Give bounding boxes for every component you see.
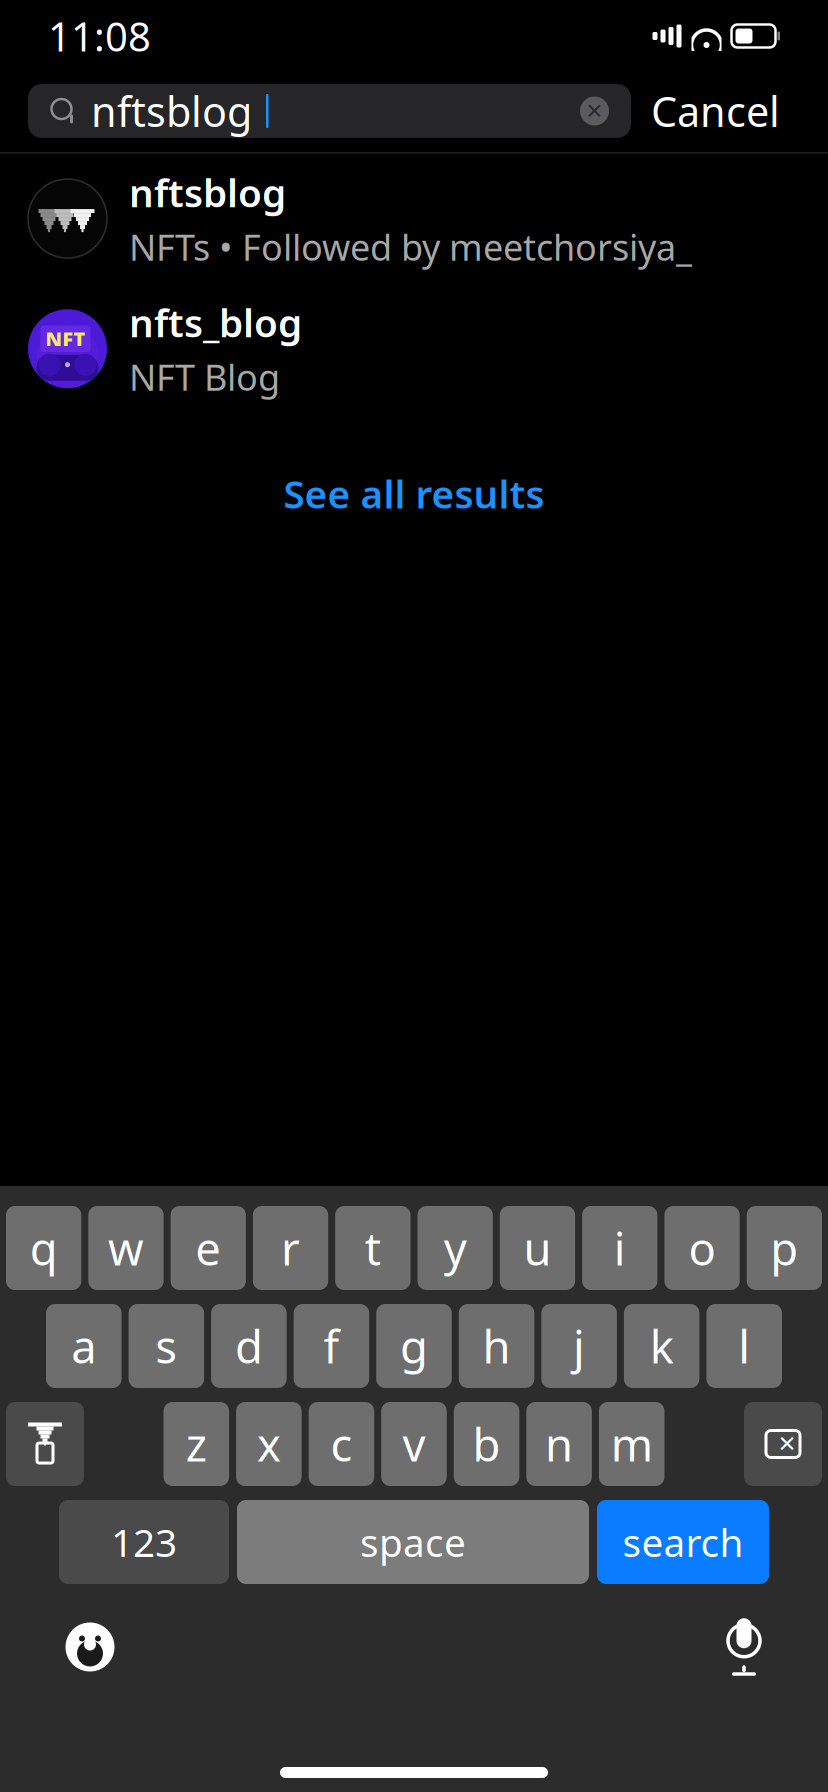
staticText: x bbox=[257, 1414, 281, 1474]
button[interactable]: k bbox=[624, 1304, 699, 1388]
button[interactable]: j bbox=[541, 1304, 617, 1388]
staticText: o bbox=[689, 1218, 716, 1278]
button[interactable]: p bbox=[747, 1206, 822, 1290]
staticText: nftsblog bbox=[129, 166, 286, 218]
button[interactable]: n bbox=[526, 1402, 592, 1486]
button[interactable]: z bbox=[164, 1402, 229, 1486]
button[interactable]: nftsblog bbox=[0, 153, 828, 284]
staticText: z bbox=[186, 1414, 207, 1474]
button[interactable]: Delete bbox=[744, 1402, 822, 1486]
staticText: i bbox=[614, 1218, 626, 1278]
staticText: q bbox=[30, 1218, 58, 1278]
staticText: t bbox=[365, 1218, 381, 1278]
staticText: c bbox=[330, 1414, 352, 1474]
staticText: g bbox=[400, 1316, 428, 1376]
staticText: v bbox=[402, 1414, 425, 1474]
staticText: ✕ bbox=[777, 1431, 796, 1457]
button[interactable]: nftsblog bbox=[28, 84, 631, 138]
staticText: 123 bbox=[111, 1516, 177, 1568]
staticText: e bbox=[195, 1218, 221, 1278]
staticText: l bbox=[738, 1316, 750, 1376]
button[interactable]: l bbox=[706, 1304, 782, 1388]
button[interactable]: s bbox=[129, 1304, 204, 1388]
button[interactable]: b bbox=[454, 1402, 519, 1486]
staticText: m bbox=[611, 1414, 653, 1474]
staticText: nftsblog bbox=[91, 84, 252, 138]
button[interactable]: Emoji keyboard bbox=[50, 1611, 130, 1683]
button[interactable]: y bbox=[417, 1206, 493, 1290]
staticText: p bbox=[770, 1218, 798, 1278]
button[interactable]: NFT bbox=[0, 284, 828, 414]
button[interactable]: Cancel bbox=[631, 84, 800, 138]
button[interactable]: r bbox=[253, 1206, 328, 1290]
staticText: NFTs • Followed by meetchorsiya_ bbox=[129, 223, 692, 271]
button[interactable]: f bbox=[294, 1304, 369, 1388]
staticText: y bbox=[444, 1218, 467, 1278]
button[interactable]: t bbox=[335, 1206, 410, 1290]
staticText: n bbox=[545, 1414, 573, 1474]
button[interactable]: u bbox=[500, 1206, 575, 1290]
staticText: s bbox=[155, 1316, 177, 1376]
staticText: NFT Blog bbox=[129, 353, 280, 401]
staticText: Cancel bbox=[651, 84, 780, 138]
staticText: w bbox=[108, 1218, 144, 1278]
button[interactable]: i bbox=[582, 1206, 657, 1290]
button[interactable]: w bbox=[88, 1206, 164, 1290]
staticText: r bbox=[281, 1218, 300, 1278]
staticText: b bbox=[473, 1414, 501, 1474]
button[interactable]: space bbox=[237, 1500, 589, 1584]
staticText: u bbox=[523, 1218, 551, 1278]
button[interactable]: d bbox=[211, 1304, 287, 1388]
staticText: nfts_blog bbox=[129, 297, 302, 348]
staticText: NFT bbox=[45, 325, 85, 352]
staticText: 11:08 bbox=[48, 9, 151, 62]
staticText: a bbox=[71, 1316, 96, 1376]
staticText: k bbox=[650, 1316, 674, 1376]
button[interactable]: See all results bbox=[0, 452, 828, 535]
button[interactable]: a bbox=[46, 1304, 122, 1388]
staticText: f bbox=[323, 1316, 339, 1376]
button[interactable]: 123 bbox=[59, 1500, 229, 1584]
button[interactable]: q bbox=[6, 1206, 81, 1290]
button[interactable]: e bbox=[171, 1206, 246, 1290]
button[interactable]: c bbox=[309, 1402, 374, 1486]
staticText: h bbox=[483, 1316, 511, 1376]
staticText: See all results bbox=[283, 468, 544, 519]
staticText: d bbox=[235, 1316, 263, 1376]
staticText: search bbox=[622, 1516, 743, 1568]
button[interactable]: h bbox=[459, 1304, 534, 1388]
staticText: j bbox=[573, 1316, 585, 1376]
button[interactable]: Shift bbox=[6, 1402, 84, 1486]
button[interactable]: m bbox=[599, 1402, 664, 1486]
button[interactable]: g bbox=[376, 1304, 452, 1388]
button[interactable]: search bbox=[597, 1500, 769, 1584]
staticText: ✕ bbox=[585, 99, 603, 123]
button[interactable]: o bbox=[664, 1206, 740, 1290]
button[interactable]: v bbox=[381, 1402, 447, 1486]
button[interactable]: Dictate bbox=[710, 1608, 778, 1686]
staticText: space bbox=[360, 1516, 466, 1568]
button[interactable]: x bbox=[236, 1402, 302, 1486]
